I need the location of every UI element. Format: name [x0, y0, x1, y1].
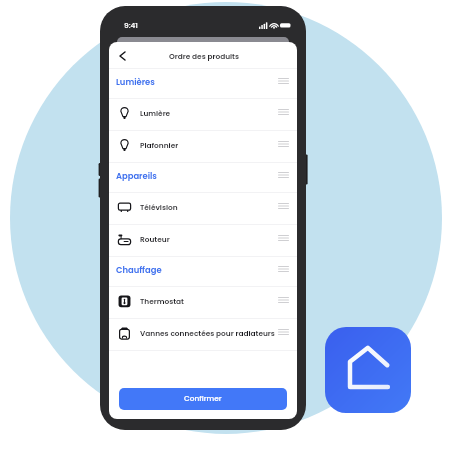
- button[interactable]: Thermostat: [109, 287, 297, 318]
- button[interactable]: Plafonnier: [109, 131, 297, 162]
- button[interactable]: Confirmer: [119, 388, 287, 410]
- staticText: Confirmer: [184, 393, 222, 403]
- button[interactable]: Lumière: [109, 99, 297, 130]
- button[interactable]: Routeur: [109, 225, 297, 256]
- staticText: Vannes connectées pour radiateurs: [140, 328, 275, 338]
- staticText: Appareils: [116, 170, 157, 182]
- button[interactable]: Vannes connectées pour radiateurs: [109, 319, 297, 350]
- button[interactable]: Télévision: [109, 193, 297, 224]
- staticText: Plafonnier: [140, 140, 179, 150]
- staticText: Thermostat: [140, 296, 184, 306]
- staticText: Lumière: [140, 108, 171, 118]
- button[interactable]: Appareils: [109, 163, 297, 192]
- button[interactable]: Lumières: [109, 69, 297, 98]
- staticText: Ordre des produits: [169, 51, 240, 61]
- staticText: Routeur: [140, 234, 170, 244]
- staticText: 9:41: [124, 20, 138, 30]
- staticText: Lumières: [116, 76, 155, 88]
- button[interactable]: Chauffage: [109, 257, 297, 286]
- staticText: Chauffage: [116, 264, 162, 276]
- staticText: Télévision: [140, 202, 178, 212]
- button[interactable]: Home app: [325, 327, 411, 413]
- button[interactable]: Back: [112, 43, 132, 67]
